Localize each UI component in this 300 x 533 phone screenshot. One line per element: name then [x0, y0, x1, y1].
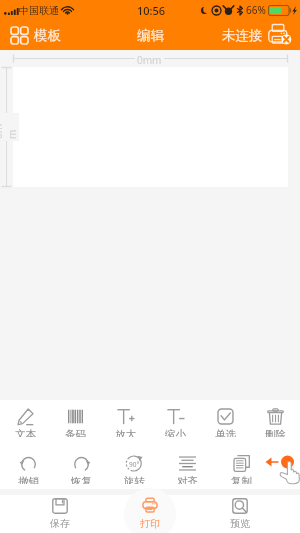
staticText: 撤销	[18, 475, 39, 484]
button[interactable]: 单选	[200, 400, 250, 437]
button[interactable]: 撤销	[2, 447, 55, 484]
staticText: 单选	[215, 428, 236, 437]
button[interactable]: 恢复	[55, 447, 108, 484]
staticText: 0mm	[0, 115, 19, 139]
staticText: 缩小	[165, 428, 186, 437]
button[interactable]: 保存	[15, 495, 105, 533]
staticText: 0mm	[137, 53, 162, 67]
staticText: 对齐	[177, 475, 198, 484]
staticText: 90°	[129, 460, 140, 469]
button[interactable]: 预览	[195, 495, 285, 533]
staticText: 文本	[15, 428, 36, 437]
button[interactable]: 缩小	[150, 400, 200, 437]
button[interactable]: 复制	[215, 447, 268, 484]
button[interactable]: Printer not connected	[222, 24, 300, 47]
button[interactable]: 放大	[100, 400, 150, 437]
staticText: 打印	[140, 517, 160, 530]
staticText: 中国联通	[19, 4, 59, 17]
button[interactable]: 文本	[0, 400, 50, 437]
staticText: 条码	[65, 428, 86, 437]
staticText: 复制	[231, 475, 252, 484]
staticText: 模板	[34, 27, 61, 44]
staticText: 编辑	[137, 27, 164, 44]
staticText: 未连接	[222, 27, 263, 44]
button[interactable]: 90°	[108, 447, 161, 484]
button[interactable]: 打印	[105, 495, 195, 533]
staticText: 保存	[50, 517, 70, 530]
staticText: 放大	[115, 428, 136, 437]
button[interactable]: 对齐	[161, 447, 214, 484]
staticText: 预览	[230, 517, 250, 530]
staticText: 10:56	[137, 3, 166, 18]
button[interactable]: 删除	[250, 400, 300, 437]
staticText: 66%	[246, 3, 266, 17]
button[interactable]: 模板	[0, 27, 71, 44]
staticText: 恢复	[71, 475, 92, 484]
button[interactable]: 条码	[50, 400, 100, 437]
staticText: 旋转	[124, 475, 145, 484]
staticText: 删除	[265, 428, 286, 437]
